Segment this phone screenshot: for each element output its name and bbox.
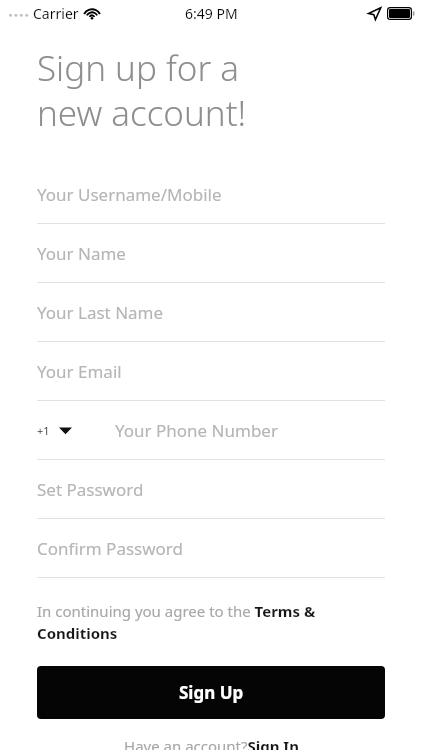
staticText: Set Password bbox=[37, 478, 144, 501]
button[interactable]: Your Username/Mobile bbox=[37, 165, 385, 224]
button[interactable]: Select country code bbox=[37, 423, 72, 438]
button[interactable]: Confirm Password bbox=[37, 519, 385, 578]
button[interactable]: Your Email bbox=[37, 342, 385, 401]
staticText: +1 bbox=[37, 423, 50, 438]
staticText: Your Email bbox=[37, 360, 122, 383]
staticText: Confirm Password bbox=[37, 537, 183, 560]
button[interactable]: Your Name bbox=[37, 224, 385, 283]
staticText: Your Last Name bbox=[37, 301, 164, 324]
staticText: Your Username/Mobile bbox=[37, 183, 222, 206]
staticText: Sign up for a new account! bbox=[37, 44, 247, 137]
button[interactable]: Sign Up bbox=[37, 666, 385, 719]
button[interactable]: Your Last Name bbox=[37, 283, 385, 342]
button[interactable]: In continuing you agree to the Terms & C… bbox=[37, 601, 385, 644]
button[interactable]: Have an account?Sign In bbox=[124, 736, 299, 750]
staticText: Your Phone Number bbox=[115, 419, 278, 442]
staticText: Your Name bbox=[37, 242, 126, 265]
button[interactable]: Set Password bbox=[37, 460, 385, 519]
button[interactable]: Your Phone Number bbox=[115, 401, 385, 459]
staticText: Sign Up bbox=[179, 681, 244, 704]
staticText: 6:49 PM bbox=[185, 4, 238, 23]
staticText: Carrier bbox=[33, 4, 79, 23]
